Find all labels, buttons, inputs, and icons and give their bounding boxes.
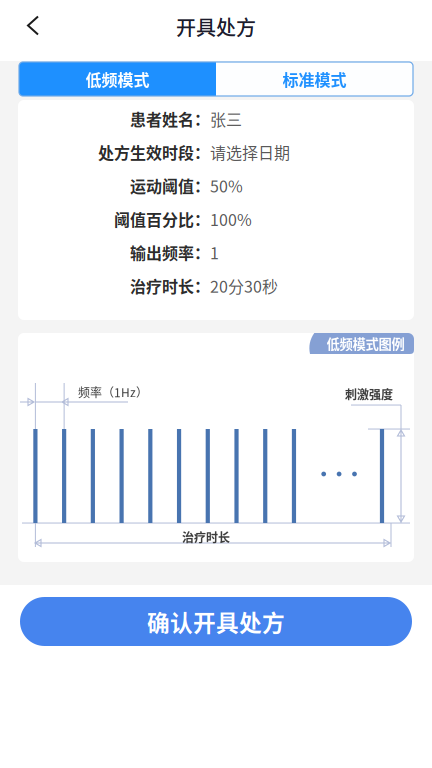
staticText: 低频模式图例 [326,334,404,353]
staticText: 输出频率： [130,241,210,264]
button[interactable]: 低频模式 [19,62,216,96]
staticText: 治疗时长 [182,528,230,546]
staticText: 处方生效时段： [98,140,210,164]
staticText: 治疗时长： [130,274,210,297]
staticText: 阈值百分比： [114,207,210,230]
staticText: 1 [210,241,219,264]
button[interactable]: 返回 [11,3,55,47]
staticText: 频率（1Hz） [78,383,148,401]
staticText: 标准模式 [282,67,346,91]
staticText: 运动阈值： [130,174,210,197]
staticText: 请选择日期 [210,140,290,164]
staticText: 张三 [210,107,242,130]
staticText: 刺激强度 [345,385,393,403]
staticText: 开具处方 [176,12,256,41]
staticText: 50% [210,174,243,197]
staticText: 低频模式 [85,67,149,91]
button[interactable]: 确认开具处方 [20,597,412,646]
staticText: 确认开具处方 [147,605,285,638]
staticText: 患者姓名： [130,107,210,130]
staticText: 20分30秒 [210,274,278,297]
button[interactable]: 标准模式 [216,62,413,96]
staticText: 100% [210,207,252,230]
